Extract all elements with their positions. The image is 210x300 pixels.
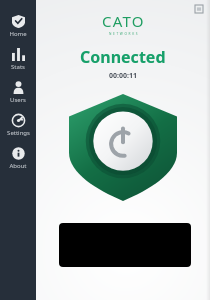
button[interactable]: Minimize window	[195, 5, 203, 13]
button[interactable]: Disconnect VPN	[69, 94, 177, 201]
button[interactable]: Advertisement banner	[59, 223, 191, 267]
staticText: N E T W O R K S	[109, 32, 138, 36]
staticText: Connected	[80, 46, 166, 68]
staticText: Settings	[7, 129, 30, 137]
button[interactable]: Users	[0, 75, 36, 108]
button[interactable]: About	[0, 141, 36, 174]
button[interactable]: Settings	[0, 108, 36, 141]
staticText: Home	[9, 30, 27, 38]
staticText: 00:00:11	[109, 71, 137, 81]
staticText: CATO	[102, 11, 145, 31]
button[interactable]: Home	[0, 9, 36, 42]
button[interactable]: Stats	[0, 42, 36, 75]
staticText: About	[9, 162, 27, 170]
staticText: Users	[10, 96, 26, 104]
staticText: Stats	[11, 63, 25, 71]
